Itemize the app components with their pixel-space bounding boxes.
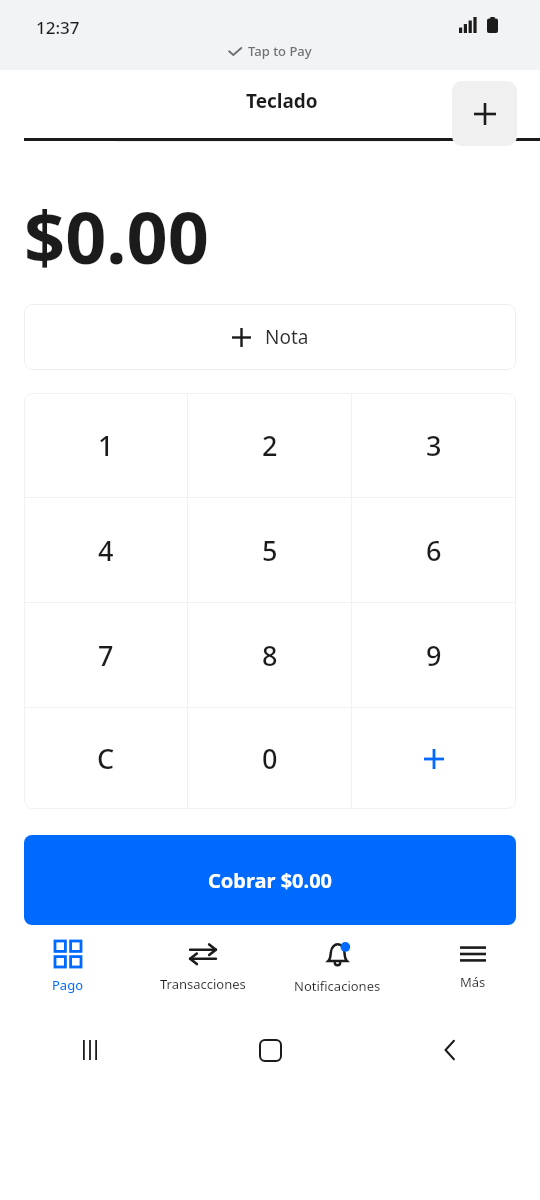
- button[interactable]: 2: [188, 393, 352, 497]
- button[interactable]: 3: [352, 393, 516, 497]
- staticText: 5: [262, 532, 278, 569]
- button[interactable]: Teclado: [24, 88, 540, 141]
- staticText: Más: [460, 973, 486, 991]
- other: Add item: [352, 708, 516, 809]
- button[interactable]: 4: [24, 498, 188, 602]
- staticText: Tap to Pay: [248, 42, 312, 60]
- staticText: 4: [98, 532, 114, 569]
- button[interactable]: Notificaciones: [270, 925, 405, 1010]
- staticText: 0: [262, 740, 278, 777]
- button[interactable]: Add item: [352, 708, 516, 809]
- staticText: 3: [426, 427, 442, 464]
- staticText: 12:37: [36, 16, 80, 39]
- staticText: 2: [262, 427, 278, 464]
- button[interactable]: Back: [433, 1033, 467, 1067]
- button[interactable]: Transacciones: [135, 925, 270, 1010]
- staticText: Pago: [52, 976, 84, 994]
- button[interactable]: 0: [188, 708, 352, 809]
- staticText: 7: [98, 637, 114, 674]
- staticText: Cobrar $0.00: [208, 867, 333, 894]
- button[interactable]: C: [24, 708, 188, 809]
- staticText: C: [97, 740, 115, 777]
- staticText: 6: [426, 532, 442, 569]
- staticText: 1: [98, 427, 114, 464]
- button[interactable]: 1: [24, 393, 188, 497]
- staticText: 8: [262, 637, 278, 674]
- button[interactable]: Pago: [0, 925, 135, 1010]
- button[interactable]: Home: [253, 1033, 287, 1067]
- staticText: $0.00: [24, 187, 209, 285]
- staticText: Transacciones: [160, 975, 246, 993]
- button[interactable]: 8: [188, 603, 352, 707]
- button[interactable]: Add: [452, 81, 517, 146]
- button[interactable]: 5: [188, 498, 352, 602]
- button[interactable]: 7: [24, 603, 188, 707]
- button[interactable]: Cobrar $0.00: [24, 835, 516, 925]
- staticText: Teclado: [246, 88, 318, 114]
- button[interactable]: Recents: [73, 1033, 107, 1067]
- staticText: Notificaciones: [294, 977, 381, 995]
- button[interactable]: 9: [352, 603, 516, 707]
- button[interactable]: 6: [352, 498, 516, 602]
- staticText: Nota: [265, 324, 309, 350]
- button[interactable]: Más: [405, 925, 540, 1010]
- staticText: 9: [426, 637, 442, 674]
- button[interactable]: Nota: [24, 304, 516, 370]
